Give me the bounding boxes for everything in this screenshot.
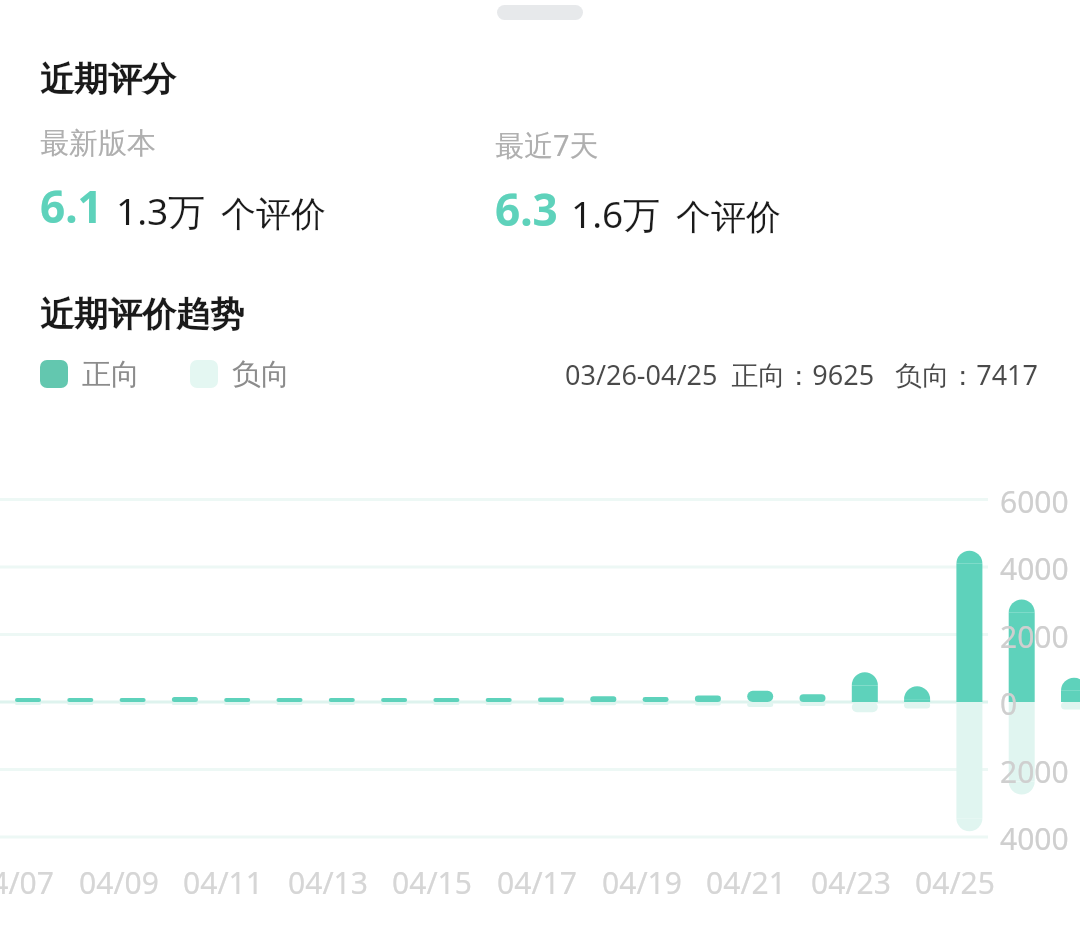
staticText: 1.3万 (116, 185, 206, 236)
staticText: 04/13 (273, 862, 383, 903)
staticText: 个评价 (676, 195, 781, 239)
other: Drag handle (497, 5, 583, 20)
staticText: 4000 (1000, 548, 1069, 589)
staticText: 0 (1000, 683, 1018, 724)
staticText: 6.1 (40, 176, 103, 236)
staticText: 04/21 (691, 862, 801, 903)
staticText: 1.6万 (571, 188, 661, 239)
staticText: 近期评分 (40, 58, 176, 101)
staticText: 最新版本 (40, 125, 156, 162)
staticText: 个评价 (221, 192, 326, 236)
staticText: 04/09 (64, 862, 174, 903)
staticText: 04/19 (587, 862, 697, 903)
button[interactable]: 正向 (40, 356, 140, 392)
button[interactable]: 负向 (190, 356, 290, 392)
staticText: 04/11 (168, 862, 278, 903)
staticText: 04/07 (0, 862, 69, 903)
staticText: 4000 (1000, 818, 1069, 859)
staticText: 2000 (1000, 616, 1069, 657)
staticText: 6000 (1000, 481, 1069, 522)
staticText: 2000 (1000, 751, 1069, 792)
staticText: 6.3 (495, 179, 558, 239)
staticText: 04/23 (796, 862, 906, 903)
staticText: 04/17 (482, 862, 592, 903)
button[interactable]: 最新版本 (40, 125, 495, 236)
staticText: 04/15 (377, 862, 487, 903)
staticText: 正向 (82, 356, 140, 392)
staticText: 近期评价趋势 (40, 293, 244, 336)
staticText: 最近7天 (495, 125, 599, 165)
staticText: 03/26-04/25 正向：9625 负向：7417 (565, 356, 1038, 392)
button[interactable]: 最近7天 (495, 125, 1015, 239)
staticText: 负向 (232, 356, 290, 392)
staticText: 04/25 (900, 862, 1010, 903)
